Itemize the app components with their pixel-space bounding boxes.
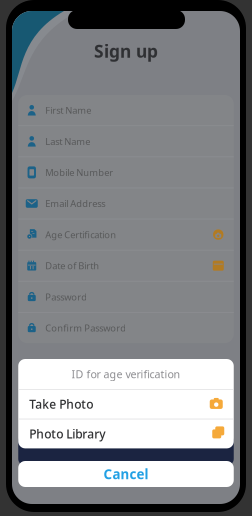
button[interactable]: Confirm Password: [18, 313, 234, 343]
button[interactable]: Age Certification: [18, 219, 234, 250]
button[interactable]: Photo Library: [18, 419, 234, 448]
button[interactable]: Cancel: [18, 461, 234, 487]
button[interactable]: Last Name: [18, 126, 234, 156]
staticText: Last Name: [45, 135, 90, 147]
button[interactable]: Email Address: [18, 188, 234, 219]
staticText: Password: [45, 291, 87, 303]
staticText: Mobile Number: [45, 166, 113, 179]
staticText: First Name: [45, 104, 91, 116]
button[interactable]: Take Photo: [18, 390, 234, 419]
staticText: Photo Library: [29, 426, 105, 442]
staticText: Age Certification: [45, 228, 116, 241]
button[interactable]: Mobile Number: [18, 157, 234, 188]
staticText: ID for age verification: [71, 367, 180, 381]
staticText: Sign up: [94, 39, 158, 62]
staticText: Email Address: [45, 197, 105, 210]
staticText: Confirm Password: [45, 322, 126, 334]
staticText: Cancel: [103, 465, 148, 483]
button[interactable]: Date of Birth: [18, 250, 234, 281]
button[interactable]: First Name: [18, 95, 234, 125]
staticText: Take Photo: [29, 396, 93, 412]
staticText: Date of Birth: [45, 259, 99, 272]
button[interactable]: Password: [18, 282, 234, 312]
